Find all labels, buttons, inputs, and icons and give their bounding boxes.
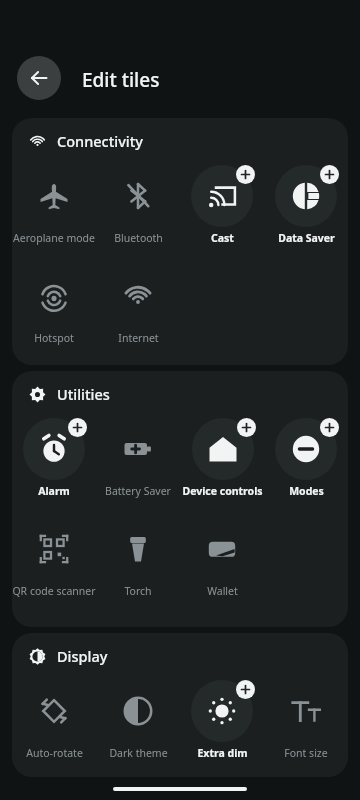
staticText: Cast (211, 231, 234, 245)
staticText: Dark theme (109, 746, 168, 760)
staticText: Data Saver (278, 231, 335, 245)
button[interactable]: Add Extra dim (236, 680, 255, 699)
button[interactable]: Battery Saver (96, 416, 180, 516)
staticText: QR code scanner (12, 584, 96, 598)
button[interactable]: Add Device controls (180, 416, 264, 516)
staticText: Modes (289, 484, 324, 498)
staticText: Torch (124, 584, 152, 598)
staticText: Battery Saver (105, 484, 171, 498)
staticText: Font size (284, 746, 328, 760)
button[interactable]: Add Cast (236, 165, 255, 184)
button[interactable]: Auto-rotate (12, 678, 96, 777)
staticText: Device controls (182, 484, 263, 498)
button[interactable]: Torch (96, 516, 180, 616)
button[interactable]: Add Device controls (237, 418, 256, 437)
staticText: Hotspot (34, 331, 74, 345)
button[interactable]: Back (17, 56, 61, 100)
staticText: Display (57, 646, 108, 666)
staticText: Alarm (38, 484, 70, 498)
staticText: Extra dim (197, 746, 248, 760)
button[interactable]: Add Alarm (12, 416, 96, 516)
button[interactable]: Hotspot (12, 263, 96, 363)
staticText: Edit tiles (82, 67, 160, 93)
button[interactable]: Font size (264, 678, 348, 777)
button[interactable]: Aeroplane mode (12, 163, 96, 263)
button[interactable]: QR code scanner (12, 516, 96, 616)
button[interactable]: Add Data Saver (264, 163, 348, 263)
staticText: Connectivity (57, 131, 143, 151)
button[interactable]: Add Extra dim (180, 678, 264, 777)
staticText: Auto-rotate (26, 746, 83, 760)
staticText: Bluetooth (114, 231, 163, 245)
button[interactable]: Add Modes (264, 416, 348, 516)
button[interactable]: Bluetooth (96, 163, 180, 263)
button[interactable]: Dark theme (96, 678, 180, 777)
button[interactable]: Internet (96, 263, 180, 363)
staticText: Wallet (207, 584, 238, 598)
button[interactable]: Add Data Saver (320, 165, 339, 184)
staticText: Internet (118, 331, 159, 345)
button[interactable]: Add Alarm (68, 418, 87, 437)
button[interactable]: Wallet (180, 516, 264, 616)
staticText: Aeroplane mode (13, 231, 95, 245)
staticText: Utilities (57, 384, 110, 404)
button[interactable]: Add Cast (180, 163, 264, 263)
button[interactable]: Add Modes (320, 418, 339, 437)
